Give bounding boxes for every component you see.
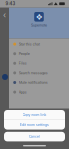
staticText: Edit room settings <box>20 123 49 127</box>
button[interactable]: Files <box>9 58 69 68</box>
staticText: Mute notifications <box>19 80 48 85</box>
staticText: 9:43 <box>5 1 15 6</box>
staticText: Cancel <box>29 135 40 139</box>
button[interactable]: Back <box>1 11 7 18</box>
button[interactable]: Star this chat <box>9 39 69 49</box>
button[interactable]: Cancel <box>4 132 65 141</box>
staticText: ‹ <box>3 10 6 19</box>
staticText: ❖ <box>36 13 42 20</box>
staticText: Star this chat <box>19 42 40 46</box>
staticText: Apps <box>19 90 27 94</box>
button[interactable]: Edit room settings <box>4 120 65 130</box>
button[interactable]: Mute notifications <box>9 78 69 87</box>
staticText: Supernote <box>31 23 47 27</box>
button[interactable]: People <box>9 49 69 58</box>
button[interactable]: Apps <box>9 87 69 97</box>
staticText: People <box>19 51 30 56</box>
staticText: Search messages <box>19 71 48 75</box>
button[interactable]: Search messages <box>9 68 69 78</box>
staticText: Copy room link <box>22 113 46 117</box>
button[interactable]: Copy room link <box>4 110 65 120</box>
staticText: Files <box>19 61 27 65</box>
